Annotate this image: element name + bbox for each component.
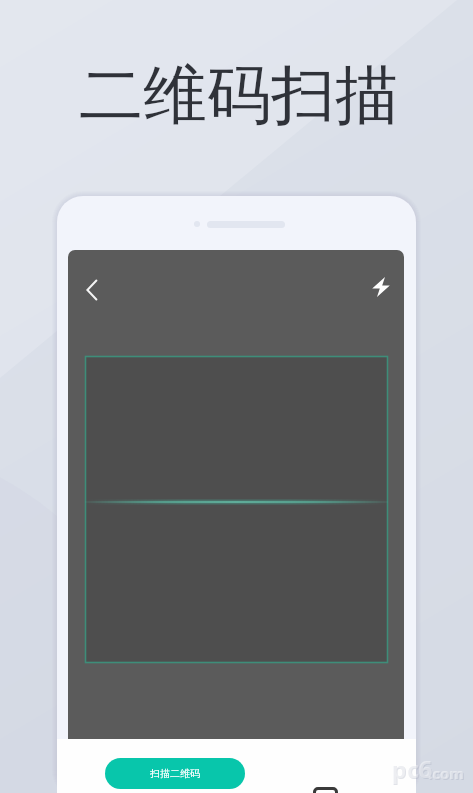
staticText: .com	[428, 763, 464, 783]
staticText: .com	[429, 764, 465, 784]
button[interactable]: 扫描二维码	[105, 758, 245, 789]
button[interactable]: Scan from album	[313, 787, 338, 793]
staticText: pc6	[391, 752, 433, 785]
staticText: 扫描二维码	[150, 767, 200, 780]
staticText: pc6	[392, 753, 434, 786]
staticText: 二维码扫描	[79, 55, 399, 136]
button[interactable]: Flashlight	[366, 272, 396, 302]
button[interactable]: Back	[76, 274, 108, 306]
